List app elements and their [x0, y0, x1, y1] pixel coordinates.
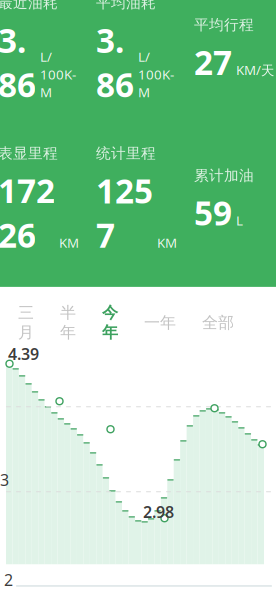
- button[interactable]: 半年: [54, 299, 82, 346]
- staticText: 表显里程: [0, 144, 58, 162]
- staticText: 27: [194, 40, 232, 84]
- staticText: 4.39: [8, 343, 39, 364]
- staticText: 3.86: [96, 18, 134, 106]
- staticText: 平均油耗: [96, 0, 156, 12]
- staticText: 2: [4, 569, 13, 590]
- staticText: 3: [0, 469, 9, 490]
- button[interactable]: 全部: [196, 309, 240, 336]
- staticText: 3.86: [0, 18, 36, 106]
- staticText: KM/天: [236, 61, 274, 79]
- staticText: 2.98: [143, 501, 174, 522]
- staticText: KM: [59, 234, 79, 251]
- staticText: 累计加油: [194, 166, 254, 184]
- button[interactable]: 三月: [12, 299, 40, 346]
- staticText: 全部: [202, 313, 234, 332]
- staticText: KM: [157, 234, 177, 251]
- staticText: L/100KM: [40, 48, 76, 101]
- staticText: 最近油耗: [0, 0, 58, 12]
- staticText: 一年: [144, 313, 176, 332]
- staticText: L: [236, 212, 243, 229]
- button[interactable]: 今年: [96, 299, 124, 346]
- staticText: 1257: [96, 168, 153, 257]
- staticText: 17226: [0, 168, 55, 257]
- staticText: 平均行程: [194, 16, 254, 34]
- staticText: 59: [194, 190, 232, 235]
- staticText: L/100KM: [138, 48, 174, 101]
- staticText: 今年: [102, 303, 118, 342]
- staticText: 三月: [18, 303, 34, 342]
- staticText: 统计里程: [96, 144, 156, 162]
- staticText: 半年: [60, 303, 76, 342]
- button[interactable]: 一年: [138, 309, 182, 336]
